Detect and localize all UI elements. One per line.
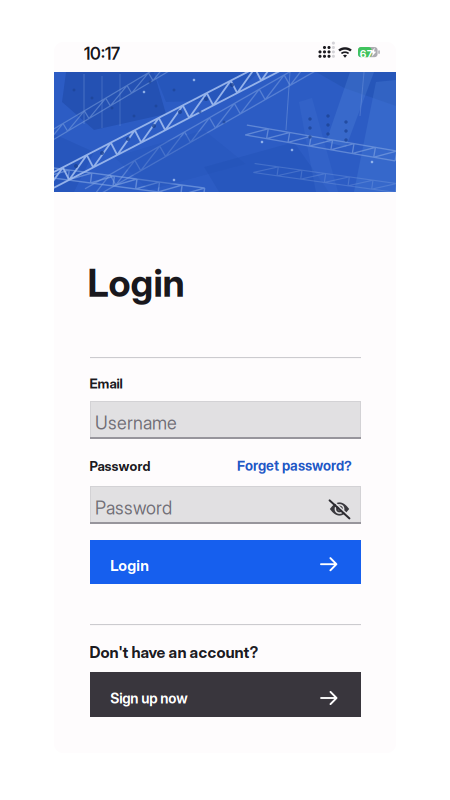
button[interactable]: Sign up now — [90, 672, 361, 717]
staticText: Password — [95, 497, 172, 519]
staticText: Email — [89, 375, 122, 392]
staticText: 10:17 — [84, 43, 120, 64]
button[interactable]: Login — [90, 540, 361, 584]
staticText: Password — [89, 458, 150, 474]
button[interactable]: Username — [90, 401, 361, 439]
staticText: 67 — [360, 48, 373, 60]
button[interactable]: Password — [90, 486, 361, 524]
staticText: Login — [87, 260, 184, 306]
staticText: Username — [95, 412, 177, 434]
button[interactable]: Forget password? — [237, 457, 352, 474]
staticText: Sign up now — [110, 690, 187, 707]
staticText: Don't have an account? — [89, 643, 258, 662]
staticText: Forget password? — [237, 457, 352, 474]
staticText: Login — [110, 557, 149, 575]
